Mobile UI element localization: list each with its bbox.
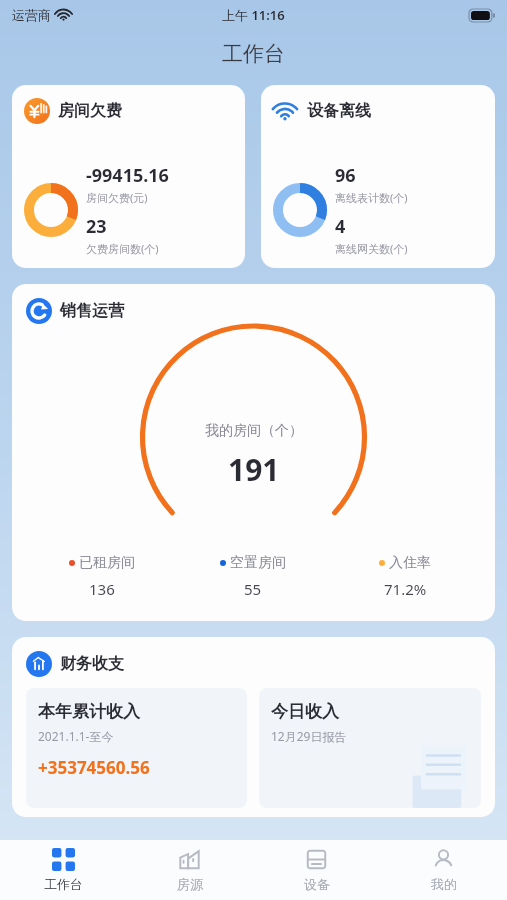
button[interactable]: 财务收支: [12, 637, 495, 817]
staticText: 销售运营: [60, 301, 124, 321]
staticText: 房间欠费: [58, 101, 122, 121]
staticText: 设备离线: [307, 101, 371, 121]
staticText: 工作台: [222, 41, 285, 67]
button[interactable]: 我的: [380, 840, 507, 900]
other: 我的: [432, 848, 455, 871]
staticText: 今日收入: [271, 701, 339, 722]
staticText: 空置房间: [230, 554, 286, 572]
staticText: 财务收支: [60, 654, 124, 674]
button[interactable]: 销售运营: [12, 284, 495, 621]
button[interactable]: 设备离线: [261, 85, 495, 268]
staticText: 本年累计收入: [38, 701, 140, 722]
staticText: 12月29日报告: [271, 728, 347, 744]
staticText: 136: [89, 579, 115, 599]
button[interactable]: 本年累计收入: [26, 688, 247, 808]
staticText: +35374560.56: [38, 756, 150, 779]
staticText: 运营商: [12, 7, 51, 23]
staticText: 23: [86, 214, 107, 239]
button[interactable]: 房间欠费: [12, 85, 245, 268]
staticText: 上午 11:16: [222, 6, 285, 24]
staticText: 55: [244, 579, 262, 599]
staticText: 71.2%: [384, 579, 427, 599]
other: 工作台: [52, 848, 75, 871]
staticText: 欠费房间数(个): [86, 241, 159, 256]
staticText: 离线网关数(个): [335, 241, 408, 256]
staticText: 我的: [431, 876, 457, 892]
staticText: 已租房间: [79, 554, 135, 572]
staticText: 191: [228, 449, 280, 490]
staticText: 我的房间（个）: [205, 422, 303, 440]
staticText: 设备: [304, 876, 330, 892]
other: 房源: [178, 848, 201, 871]
staticText: 离线表计数(个): [335, 190, 408, 205]
button[interactable]: 今日收入: [259, 688, 481, 808]
staticText: 房源: [177, 876, 203, 892]
staticText: 2021.1.1-至今: [38, 728, 114, 744]
button[interactable]: 设备: [253, 840, 380, 900]
button[interactable]: 房源: [126, 840, 253, 900]
button[interactable]: 工作台: [0, 840, 126, 900]
staticText: -99415.16: [86, 163, 169, 188]
staticText: 工作台: [44, 876, 83, 892]
staticText: 96: [335, 163, 356, 188]
staticText: 房间欠费(元): [86, 190, 148, 205]
staticText: 入住率: [389, 554, 431, 572]
staticText: 4: [335, 214, 346, 239]
other: 设备: [305, 848, 328, 871]
